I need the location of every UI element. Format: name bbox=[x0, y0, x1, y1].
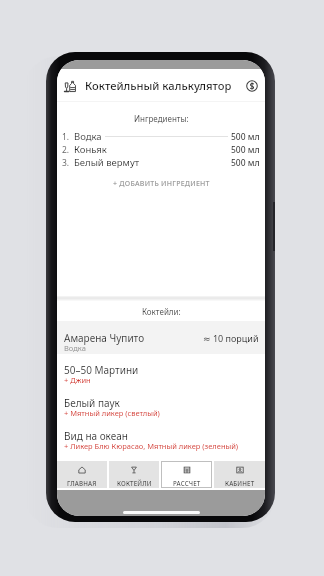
staticText: КОКТЕЙЛИ bbox=[117, 479, 152, 487]
staticText: РАССЧЕТ bbox=[173, 479, 201, 487]
staticText: 1. bbox=[62, 131, 70, 143]
staticText: Коньяк bbox=[74, 143, 107, 156]
button[interactable]: 50–50 Мартини bbox=[57, 354, 265, 387]
staticText: Амарена Чупито bbox=[64, 331, 145, 345]
staticText: Водка bbox=[64, 343, 86, 352]
button[interactable]: КОКТЕЙЛИ bbox=[109, 461, 159, 488]
staticText: 500 мл bbox=[231, 131, 260, 143]
button[interactable]: Амарена Чупито bbox=[57, 321, 265, 354]
staticText: 2. bbox=[62, 144, 70, 156]
button[interactable]: 3. bbox=[57, 156, 265, 169]
staticText: ГЛАВНАЯ bbox=[67, 479, 97, 487]
staticText: Белый паук bbox=[64, 396, 120, 410]
button[interactable]: Бар bbox=[62, 78, 78, 94]
button[interactable]: Белый паук bbox=[57, 387, 265, 420]
staticText: + ДОБАВИТЬ ИНГРЕДИЕНТ bbox=[113, 179, 210, 189]
staticText: Ингредиенты: bbox=[134, 113, 189, 124]
staticText: + Мятный ликер (светлый) bbox=[64, 408, 160, 418]
staticText: ≈ 10 порций bbox=[203, 332, 259, 344]
staticText: Коктейльный калькулятор bbox=[85, 78, 232, 93]
staticText: Вид на океан bbox=[64, 429, 128, 443]
staticText: 3. bbox=[62, 157, 70, 169]
staticText: 500 мл bbox=[231, 144, 260, 156]
staticText: 500 мл bbox=[231, 157, 260, 169]
staticText: + Джин bbox=[64, 375, 91, 385]
button[interactable]: ГЛАВНАЯ bbox=[57, 461, 107, 488]
button[interactable]: РАССЧЕТ bbox=[161, 461, 212, 488]
button[interactable]: Вид на океан bbox=[57, 420, 265, 453]
staticText: + Ликер Блю Кюрасао, Мятный ликер (зелен… bbox=[64, 441, 239, 451]
button[interactable]: КАБИНЕТ bbox=[214, 461, 265, 488]
button[interactable]: 2. bbox=[57, 143, 265, 156]
staticText: Белый вермут bbox=[74, 156, 140, 169]
staticText: Водка bbox=[74, 130, 102, 143]
button[interactable]: + ДОБАВИТЬ ИНГРЕДИЕНТ bbox=[107, 177, 216, 191]
button[interactable]: Цена bbox=[244, 78, 260, 94]
staticText: 50–50 Мартини bbox=[64, 363, 139, 377]
button[interactable]: 1. bbox=[57, 130, 265, 143]
staticText: КАБИНЕТ bbox=[225, 479, 255, 487]
staticText: Коктейли: bbox=[142, 306, 181, 317]
